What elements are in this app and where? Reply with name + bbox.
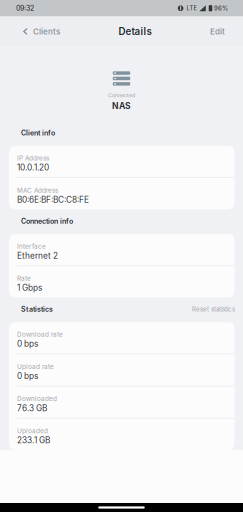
button[interactable]: Edit xyxy=(202,16,243,46)
staticText: Download rate xyxy=(17,331,63,338)
staticText: NAS xyxy=(112,101,131,111)
staticText: Details xyxy=(118,26,151,37)
staticText: Connected xyxy=(108,92,135,98)
staticText: Downloaded xyxy=(17,395,57,403)
staticText: Rate xyxy=(17,275,31,282)
staticText: Interface xyxy=(17,242,46,250)
staticText: 76.3 GB xyxy=(17,403,47,413)
staticText: Upload rate xyxy=(17,363,54,370)
staticText: B0:6E:BF:BC:C8:FE xyxy=(17,195,89,205)
staticText: Edit xyxy=(210,27,225,36)
staticText: Statistics xyxy=(21,305,53,313)
button[interactable]: Reset statistics xyxy=(192,305,235,313)
staticText: 1 Gbps xyxy=(17,283,42,293)
staticText: Client info xyxy=(21,129,55,137)
staticText: 0 bps xyxy=(17,371,38,381)
staticText: 233.1 GB xyxy=(17,435,50,445)
staticText: MAC Address xyxy=(17,186,58,194)
staticText: 09:32 xyxy=(16,4,34,12)
staticText: Connection info xyxy=(21,217,73,225)
staticText: LTE xyxy=(186,5,196,12)
staticText: Uploaded xyxy=(17,427,48,435)
staticText: Ethernet 2 xyxy=(17,251,58,261)
staticText: 96% xyxy=(214,4,228,12)
staticText: 0 bps xyxy=(17,339,38,349)
staticText: IP Address xyxy=(17,154,49,162)
staticText: 10.0.1.20 xyxy=(17,163,49,173)
button[interactable]: Clients xyxy=(0,16,68,46)
staticText: Clients xyxy=(33,27,60,36)
staticText: Reset statistics xyxy=(192,305,235,313)
